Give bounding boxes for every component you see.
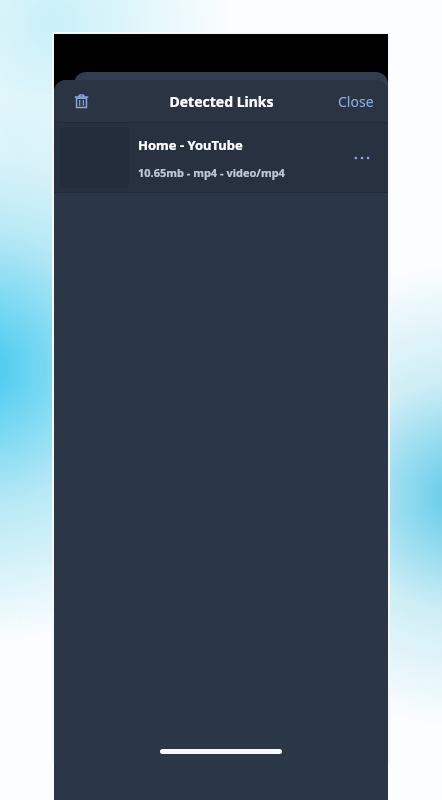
staticText: Close (338, 92, 374, 111)
staticText: 10.65mb - mp4 - video/mp4 (138, 165, 285, 180)
button[interactable]: Delete all (64, 84, 98, 118)
button[interactable]: Home - YouTube (54, 123, 388, 192)
staticText: Home - YouTube (138, 136, 243, 154)
button[interactable]: More options (342, 138, 382, 178)
button[interactable]: Close (324, 84, 388, 119)
staticText: Detected Links (169, 92, 274, 111)
